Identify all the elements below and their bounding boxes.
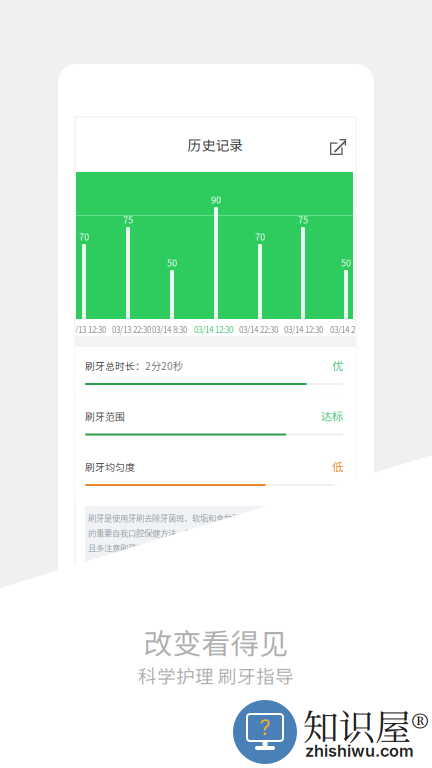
staticText: 70	[79, 230, 89, 243]
staticText: 刷牙范围	[85, 409, 125, 423]
staticText: 03/14 12:30	[284, 324, 323, 335]
staticText: 90	[211, 193, 221, 206]
staticText: 科学护理 刷牙指导	[138, 662, 294, 689]
staticText: ?	[259, 715, 270, 740]
staticText: 03/14 22:30	[239, 324, 278, 335]
button[interactable]: 分享	[330, 139, 347, 156]
button[interactable]: 刷牙均匀度	[75, 449, 356, 499]
staticText: 刷牙均匀度	[85, 459, 135, 474]
staticText: 75	[123, 213, 133, 226]
button[interactable]: 刷牙范围	[75, 398, 356, 449]
staticText: zhishiwu.com	[305, 741, 414, 761]
staticText: 刷牙是使用牙刷去除牙菌斑、软垢和食物残渣，保持口腔清洁的重要自我口腔保健方法，每…	[88, 512, 304, 554]
staticText: 知识屋®	[303, 699, 429, 751]
staticText: 03/13 12:30	[67, 324, 106, 335]
staticText: 03/13 22:30	[112, 324, 151, 335]
staticText: 70	[255, 230, 265, 243]
staticText: 改变看得见	[143, 621, 288, 662]
staticText: 达标	[321, 407, 343, 424]
staticText: 75	[298, 213, 308, 226]
staticText: 优	[332, 357, 343, 373]
staticText: 03/14 8:30	[152, 324, 187, 335]
staticText: 低	[332, 458, 343, 474]
staticText: 03/14 12:30	[194, 324, 233, 335]
staticText: 2分20秒	[145, 358, 183, 373]
staticText: 50	[341, 256, 351, 269]
staticText: 历史记录	[187, 135, 243, 154]
staticText: 50	[167, 256, 177, 269]
staticText: 刷牙总时长：	[85, 358, 145, 373]
staticText: 03/14 22:30	[330, 324, 369, 335]
button[interactable]: 刷牙总时长：	[75, 348, 356, 398]
